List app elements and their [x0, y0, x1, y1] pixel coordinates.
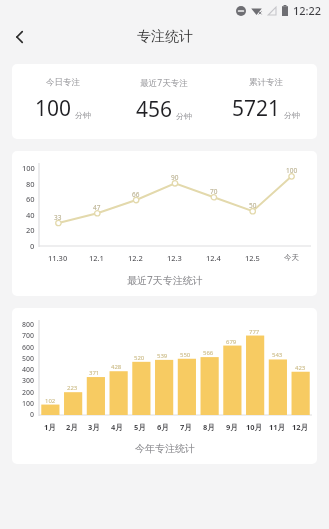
staticText: 520: [134, 354, 145, 362]
staticText: 12.2: [128, 253, 143, 263]
staticText: 10月: [246, 422, 263, 432]
staticText: 700: [22, 331, 35, 341]
staticText: 9月: [226, 422, 238, 432]
button[interactable]: 800: [12, 308, 317, 464]
staticText: 最近7天专注统计: [127, 273, 203, 287]
staticText: 423: [295, 364, 306, 372]
staticText: 最近7天专注: [140, 77, 188, 89]
staticText: 12:22: [293, 3, 322, 18]
staticText: 6月: [157, 422, 169, 432]
staticText: 分钟: [75, 110, 91, 120]
staticText: 5月: [134, 422, 146, 432]
staticText: 400: [22, 365, 35, 375]
staticText: 3月: [88, 422, 100, 432]
staticText: 428: [111, 363, 122, 371]
staticText: 102: [45, 397, 56, 405]
staticText: 5721: [232, 94, 281, 123]
staticText: 200: [22, 388, 35, 398]
staticText: 100: [22, 399, 35, 409]
staticText: 分钟: [284, 110, 300, 120]
staticText: 100: [22, 163, 35, 173]
staticText: 70: [210, 187, 218, 196]
staticText: 2月: [66, 422, 78, 432]
staticText: 今日专注: [46, 77, 80, 88]
button[interactable]: 今日专注: [12, 64, 317, 139]
staticText: 300: [22, 376, 35, 386]
staticText: 今天: [284, 253, 299, 262]
staticText: 543: [272, 351, 283, 359]
staticText: 66: [132, 190, 140, 199]
staticText: 456: [136, 95, 173, 124]
staticText: 12.5: [245, 253, 260, 263]
staticText: 分钟: [176, 111, 192, 121]
staticText: 223: [67, 384, 78, 392]
staticText: 1月: [44, 422, 56, 432]
staticText: 12.1: [89, 253, 104, 263]
staticText: 679: [226, 338, 237, 346]
staticText: 566: [203, 349, 214, 357]
staticText: 12.3: [167, 253, 182, 263]
staticText: 今年专注统计: [135, 442, 195, 455]
staticText: 33: [54, 213, 62, 222]
staticText: 800: [22, 320, 35, 330]
staticText: 47: [93, 203, 101, 212]
staticText: 500: [22, 354, 35, 364]
staticText: 371: [89, 369, 100, 377]
staticText: 8月: [203, 422, 215, 432]
staticText: 20: [26, 225, 35, 235]
staticText: 50: [249, 201, 257, 210]
staticText: 专注统计: [137, 28, 193, 46]
staticText: 7月: [180, 422, 192, 432]
staticText: 40: [26, 210, 35, 220]
staticText: 12月: [292, 422, 309, 432]
staticText: 80: [26, 179, 35, 189]
staticText: 累计专注: [249, 77, 283, 88]
staticText: 60: [26, 194, 35, 204]
staticText: 600: [22, 343, 35, 353]
staticText: 100: [286, 166, 298, 175]
button[interactable]: Back: [0, 20, 40, 54]
staticText: 0: [30, 241, 35, 251]
staticText: 0: [30, 410, 35, 420]
staticText: 4月: [111, 422, 123, 432]
staticText: 539: [157, 352, 168, 360]
staticText: 12.4: [206, 253, 221, 263]
staticText: 11月: [269, 422, 286, 432]
staticText: 90: [171, 173, 179, 182]
button[interactable]: 100: [12, 151, 317, 296]
staticText: 11.30: [48, 253, 68, 263]
staticText: 100: [35, 94, 72, 123]
staticText: 550: [180, 351, 191, 359]
staticText: 777: [249, 328, 260, 336]
